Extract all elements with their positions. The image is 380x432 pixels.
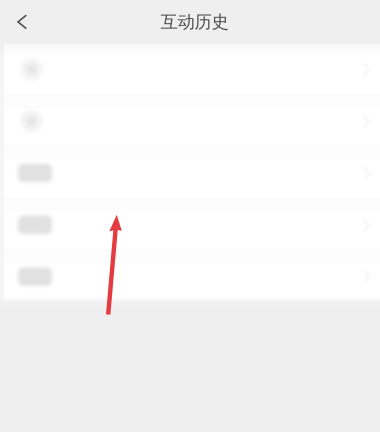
button[interactable] xyxy=(0,199,380,250)
button[interactable]: Back xyxy=(0,0,40,44)
button[interactable] xyxy=(0,148,380,198)
staticText: 互动历史 xyxy=(160,11,228,33)
button[interactable] xyxy=(0,251,380,302)
